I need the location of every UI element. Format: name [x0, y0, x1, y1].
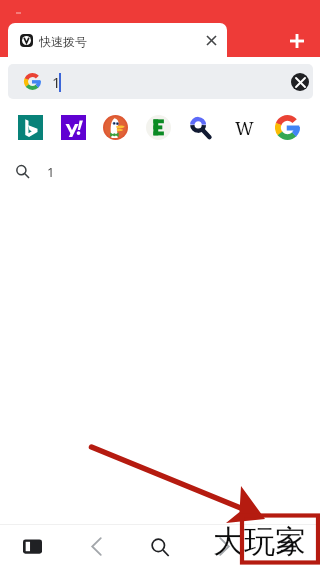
- button[interactable]: New tab: [274, 24, 320, 57]
- button[interactable]: Forward: [192, 525, 256, 568]
- button[interactable]: Close tab: [196, 23, 227, 57]
- button[interactable]: Qwant: [184, 111, 216, 143]
- button[interactable]: Ecosia: [142, 111, 174, 143]
- button[interactable]: Wikipedia: [228, 111, 260, 143]
- button[interactable]: Panels: [0, 525, 64, 568]
- staticText: 1: [47, 163, 55, 181]
- button[interactable]: Bing: [14, 111, 46, 143]
- button[interactable]: Clear query: [282, 64, 313, 99]
- button[interactable]: 1: [8, 64, 313, 99]
- button[interactable]: Back: [64, 525, 128, 568]
- button[interactable]: Yahoo: [57, 111, 89, 143]
- button[interactable]: Search: [128, 525, 192, 568]
- staticText: 1: [52, 72, 61, 92]
- button[interactable]: DuckDuckGo: [99, 111, 131, 143]
- button[interactable]: 快速拨号: [8, 23, 227, 57]
- button[interactable]: 1: [0, 158, 320, 188]
- staticText: 快速拨号: [39, 34, 87, 49]
- button[interactable]: Google: [271, 111, 303, 143]
- button[interactable]: Menu: [256, 525, 320, 568]
- staticText: W: [235, 116, 254, 141]
- staticText: 大玩家: [213, 522, 306, 561]
